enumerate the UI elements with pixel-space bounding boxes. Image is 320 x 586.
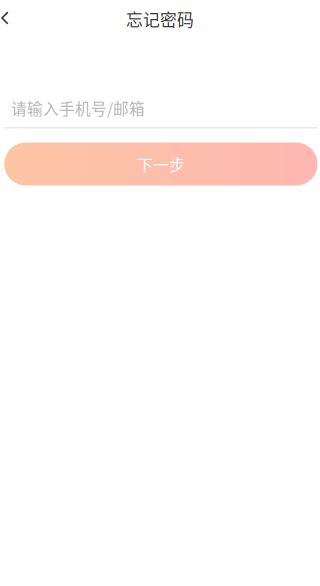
staticText: 忘记密码 — [126, 7, 194, 31]
staticText: 请输入手机号/邮箱 — [11, 97, 145, 119]
staticText: 下一步 — [137, 152, 185, 175]
button[interactable]: Back — [0, 4, 27, 34]
button[interactable]: 请输入手机号/邮箱 — [0, 97, 320, 128]
button[interactable]: 下一步 — [4, 142, 317, 185]
